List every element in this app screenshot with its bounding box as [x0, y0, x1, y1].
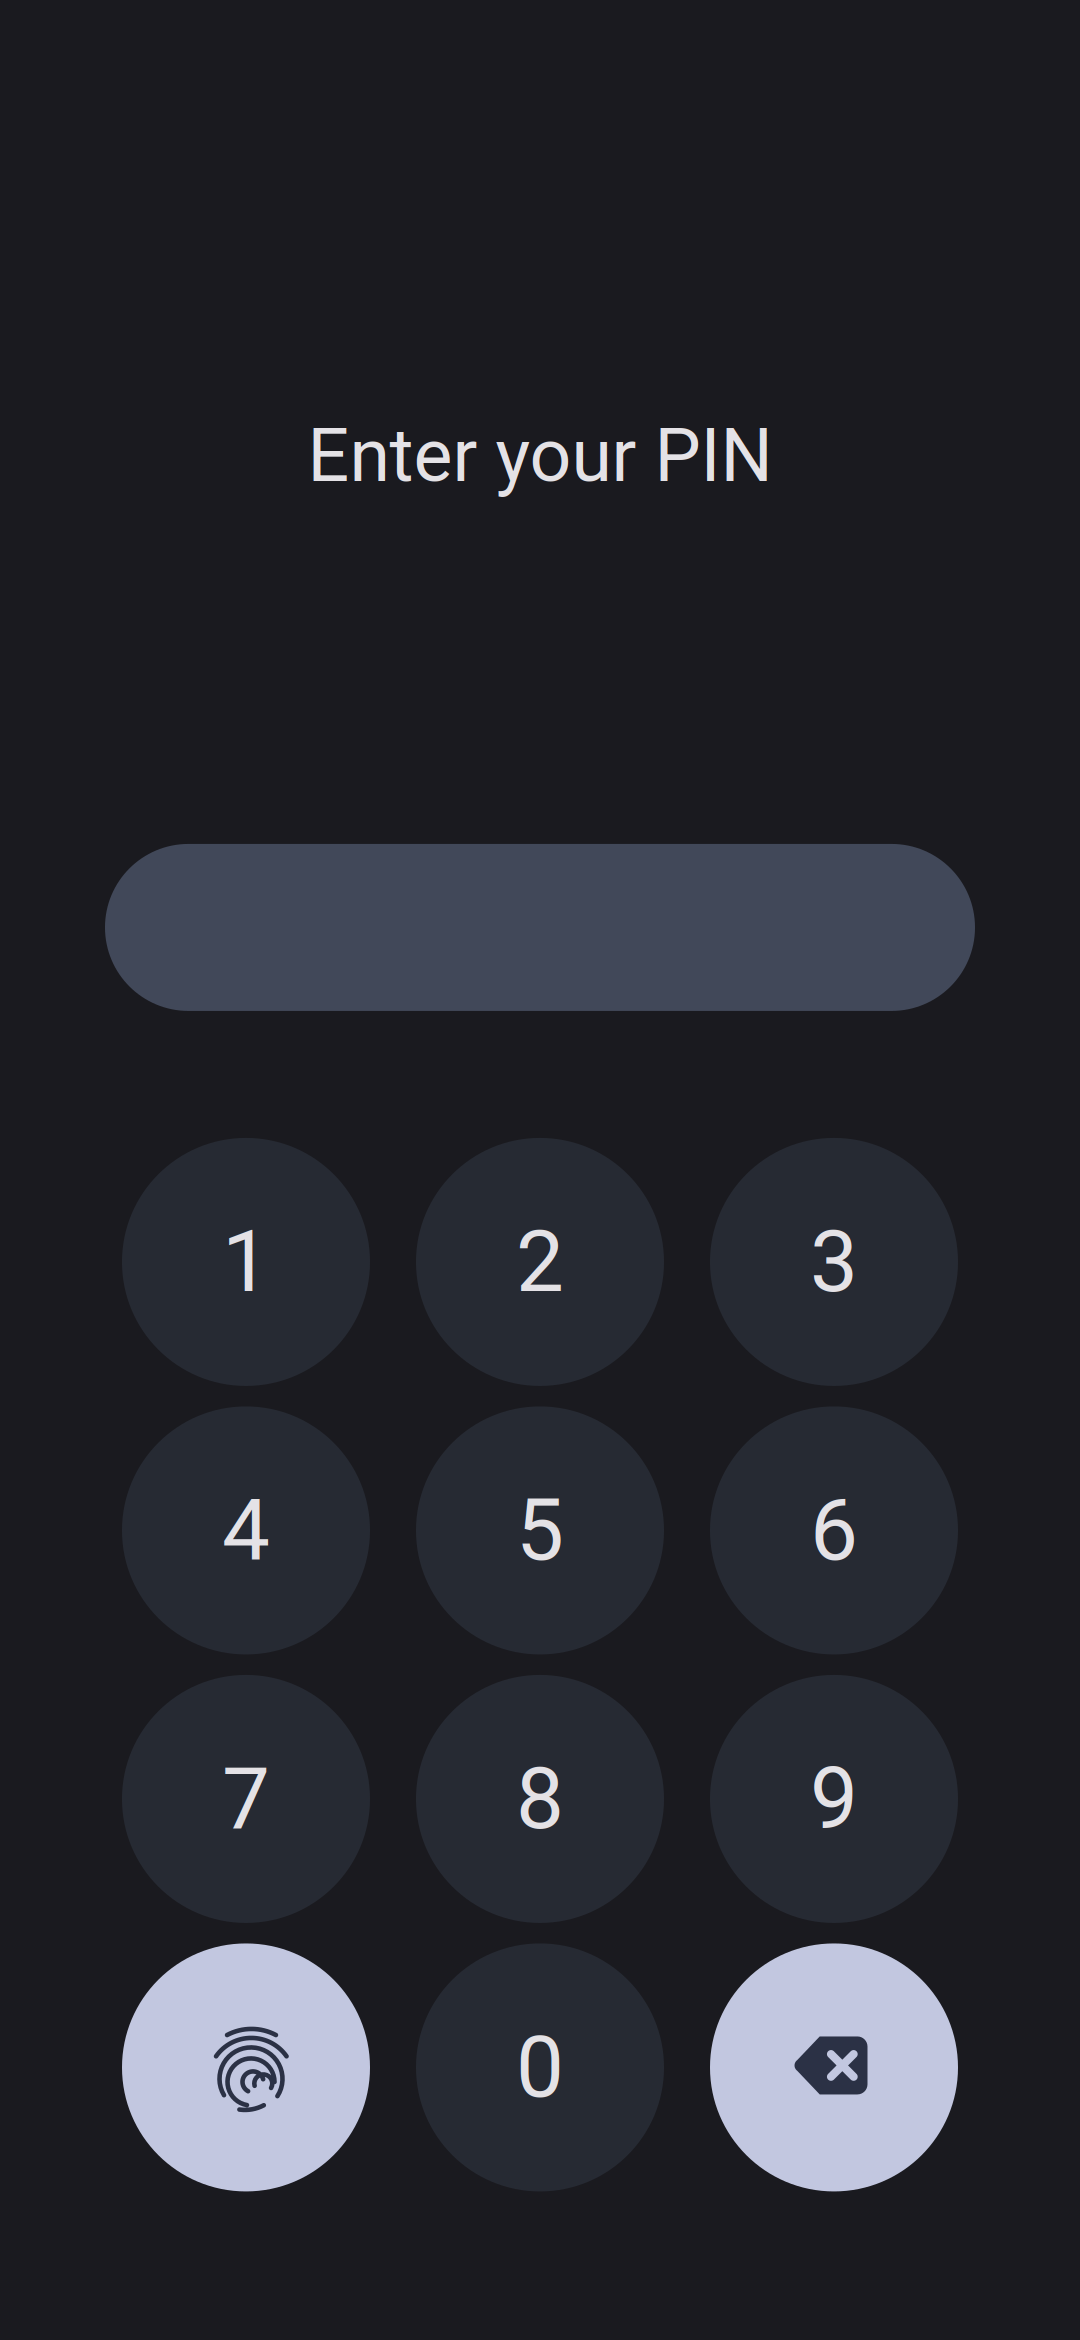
- button[interactable]: 1: [122, 1138, 370, 1386]
- button[interactable]: 6: [710, 1406, 958, 1654]
- button[interactable]: 2: [416, 1138, 664, 1386]
- staticText: 1: [222, 1212, 270, 1312]
- button[interactable]: 9: [710, 1675, 958, 1923]
- button[interactable]: 8: [416, 1675, 664, 1923]
- button[interactable]: 7: [122, 1675, 370, 1923]
- button[interactable]: Unlock with fingerprint: [122, 1943, 370, 2191]
- staticText: 7: [222, 1749, 270, 1849]
- staticText: 2: [516, 1212, 564, 1312]
- staticText: 0: [516, 2017, 564, 2117]
- button[interactable]: Delete: [710, 1943, 958, 2191]
- button[interactable]: 0: [416, 1943, 664, 2191]
- button[interactable]: 5: [416, 1406, 664, 1654]
- staticText: 6: [810, 1480, 858, 1580]
- staticText: 4: [222, 1480, 270, 1580]
- button[interactable]: 3: [710, 1138, 958, 1386]
- staticText: 5: [516, 1480, 564, 1580]
- staticText: 3: [810, 1212, 858, 1312]
- staticText: 8: [516, 1749, 564, 1849]
- staticText: Enter your PIN: [307, 413, 772, 499]
- staticText: 9: [810, 1749, 858, 1849]
- button[interactable]: 4: [122, 1406, 370, 1654]
